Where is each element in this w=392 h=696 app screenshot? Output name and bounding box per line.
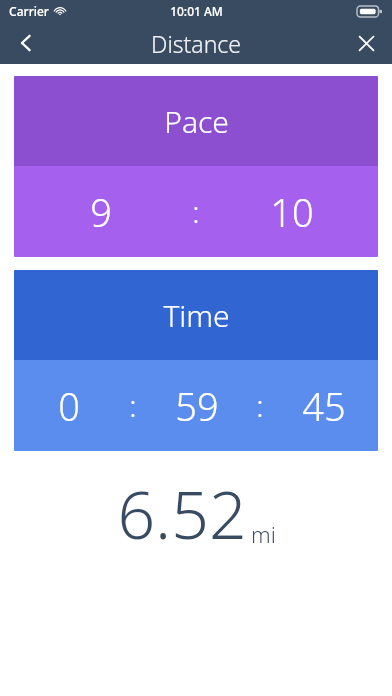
staticText: 10	[270, 186, 314, 238]
staticText: 45	[302, 380, 346, 432]
staticText: :	[192, 191, 200, 232]
staticText: Pace	[164, 101, 229, 142]
staticText: 9	[90, 186, 112, 238]
staticText: Carrier	[9, 3, 49, 19]
button[interactable]: Time	[14, 270, 378, 451]
staticText: 0	[58, 380, 80, 432]
staticText: 6.52	[117, 468, 247, 558]
staticText: 59	[175, 380, 219, 432]
staticText: Distance	[151, 28, 241, 59]
button[interactable]: Back	[0, 22, 52, 64]
button[interactable]: Close	[340, 22, 392, 64]
staticText: 10:01 AM	[170, 3, 223, 19]
button[interactable]: Pace	[14, 76, 378, 257]
staticText: :	[256, 385, 264, 426]
staticText: mi	[251, 519, 276, 549]
staticText: :	[129, 385, 137, 426]
staticText: Time	[163, 295, 230, 336]
